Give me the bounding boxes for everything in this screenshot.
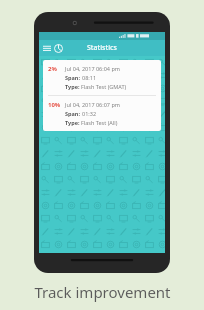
button[interactable]: Open navigation menu bbox=[41, 42, 53, 54]
button[interactable]: 2% bbox=[43, 60, 161, 95]
staticText: 08:11 bbox=[82, 74, 97, 81]
staticText: 2% bbox=[48, 65, 57, 73]
staticText: Type: bbox=[65, 83, 81, 90]
staticText: Span: bbox=[65, 110, 82, 117]
staticText: 10% bbox=[48, 101, 61, 109]
staticText: Jul 04, 2017 06:07 pm bbox=[65, 101, 120, 108]
staticText: Statistics bbox=[87, 43, 117, 53]
staticText: Jul 04, 2017 06:04 pm bbox=[65, 65, 120, 72]
button[interactable]: 10% bbox=[43, 96, 161, 131]
staticText: Track improvement bbox=[34, 282, 171, 302]
staticText: 01:32 bbox=[82, 110, 97, 117]
button[interactable]: Statistics chart bbox=[52, 42, 64, 54]
staticText: Flash Test (GMAT) bbox=[81, 83, 127, 90]
staticText: Span: bbox=[65, 74, 82, 81]
staticText: Type: bbox=[65, 119, 81, 126]
staticText: Flash Test (All) bbox=[81, 119, 118, 126]
